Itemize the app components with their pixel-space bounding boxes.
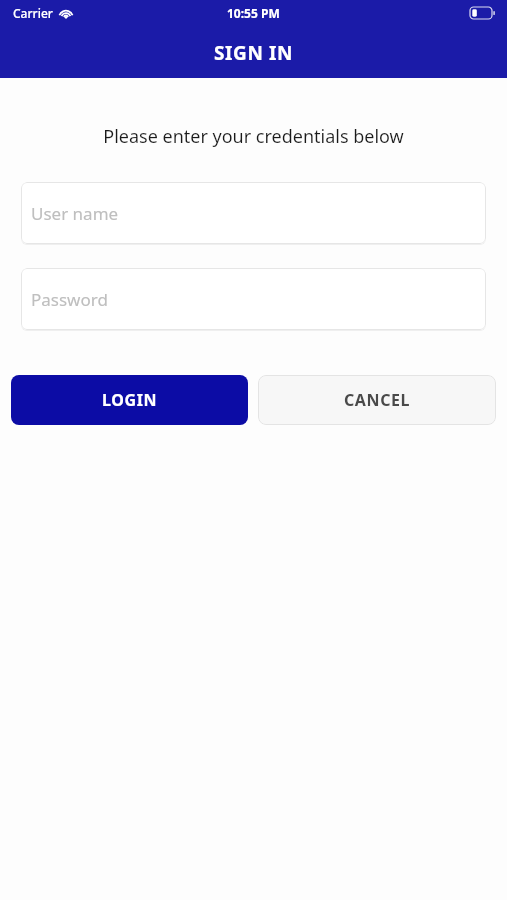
staticText: Carrier [13, 5, 53, 21]
button[interactable]: User name [21, 182, 486, 244]
staticText: 10:55 PM [227, 5, 280, 21]
button[interactable]: CANCEL [258, 375, 496, 425]
button[interactable]: Password [21, 268, 486, 330]
staticText: Password [31, 288, 108, 311]
staticText: CANCEL [344, 389, 411, 411]
button[interactable]: LOGIN [11, 375, 248, 425]
staticText: User name [31, 202, 119, 225]
staticText: LOGIN [102, 389, 158, 411]
staticText: Please enter your credentials below [0, 124, 507, 149]
staticText: SIGN IN [214, 40, 294, 66]
